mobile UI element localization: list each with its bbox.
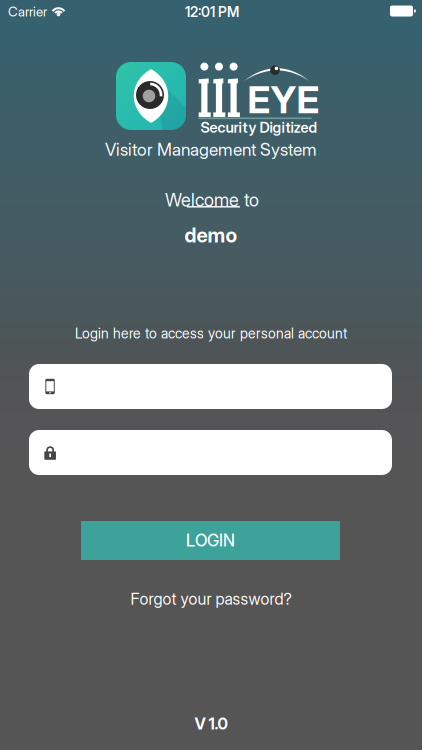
staticText: Visitor Management System <box>105 139 317 160</box>
staticText: V 1.0 <box>194 714 227 733</box>
staticText: demo <box>184 223 237 247</box>
staticText: 12:01 PM <box>185 3 239 20</box>
staticText: EYE <box>247 77 319 122</box>
staticText: LOGIN <box>186 530 235 551</box>
button[interactable]: LOGIN <box>81 521 340 560</box>
staticText: Forgot your password? <box>130 589 291 609</box>
staticText: Carrier <box>8 3 47 20</box>
staticText: Login here to access your personal accou… <box>75 325 347 342</box>
staticText: Security Digitized <box>200 118 317 136</box>
staticText: Welcome to <box>165 189 259 211</box>
button[interactable]: Forgot your password? <box>111 586 311 612</box>
